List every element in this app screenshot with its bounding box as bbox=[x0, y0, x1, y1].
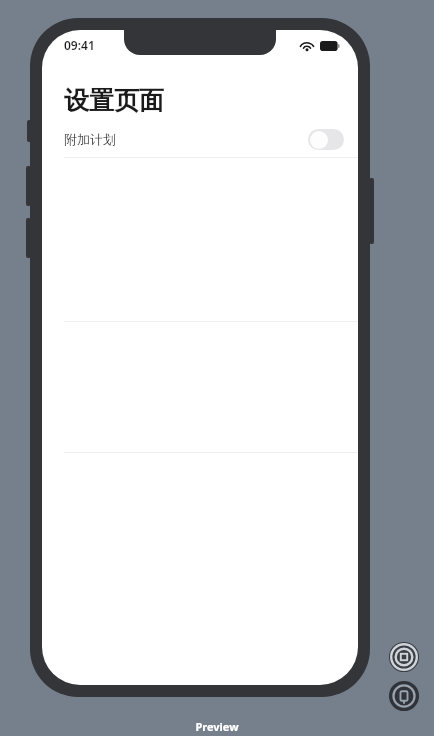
button[interactable]: 附加计划 bbox=[42, 124, 358, 154]
staticText: 附加计划 bbox=[64, 131, 116, 147]
button[interactable]: Select preview bbox=[386, 639, 422, 675]
staticText: 09:41 bbox=[64, 37, 95, 53]
button[interactable]: 附加计划 开关 bbox=[308, 129, 344, 150]
button[interactable]: Live preview bbox=[386, 678, 422, 714]
staticText: 设置页面 bbox=[64, 85, 164, 116]
staticText: Preview bbox=[0, 719, 434, 734]
